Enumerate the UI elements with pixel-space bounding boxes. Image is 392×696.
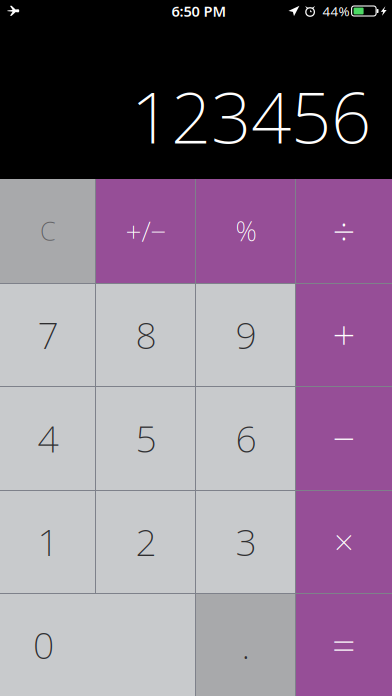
button[interactable]: = [296,593,392,696]
staticText: 1 [37,517,58,566]
button[interactable]: % [196,179,296,283]
button[interactable]: 6 [196,386,296,490]
staticText: % [235,213,256,249]
staticText: +/− [125,212,166,250]
button[interactable]: +/− [96,179,196,283]
button[interactable]: 0 [0,593,196,696]
button[interactable]: 5 [96,386,196,490]
staticText: = [332,617,356,672]
staticText: − [332,411,355,464]
staticText: 6 [235,413,256,463]
staticText: 5 [135,413,156,463]
staticText: 3 [235,517,256,566]
staticText: 7 [37,310,58,359]
staticText: C [40,214,56,248]
button[interactable]: − [296,386,392,490]
staticText: 4 [37,413,58,463]
staticText: 44% [323,2,350,20]
staticText: + [332,308,355,361]
staticText: ÷ [332,204,355,257]
button[interactable]: 1 [0,490,96,593]
button[interactable]: 3 [196,490,296,593]
staticText: × [334,518,354,564]
staticText: 123456 [131,69,371,163]
staticText: . [241,620,250,669]
button[interactable]: . [196,593,296,696]
staticText: 2 [135,517,156,566]
button[interactable]: + [296,283,392,386]
button[interactable]: ÷ [296,179,392,283]
button[interactable]: × [296,490,392,593]
staticText: 6:50 PM [171,1,226,21]
button[interactable]: 4 [0,386,96,490]
button[interactable]: 9 [196,283,296,386]
button[interactable]: 7 [0,283,96,386]
staticText: 0 [33,620,54,669]
staticText: 9 [235,310,256,359]
staticText: 8 [135,310,156,359]
button[interactable]: C [0,179,96,283]
button[interactable]: 8 [96,283,196,386]
button[interactable]: 2 [96,490,196,593]
